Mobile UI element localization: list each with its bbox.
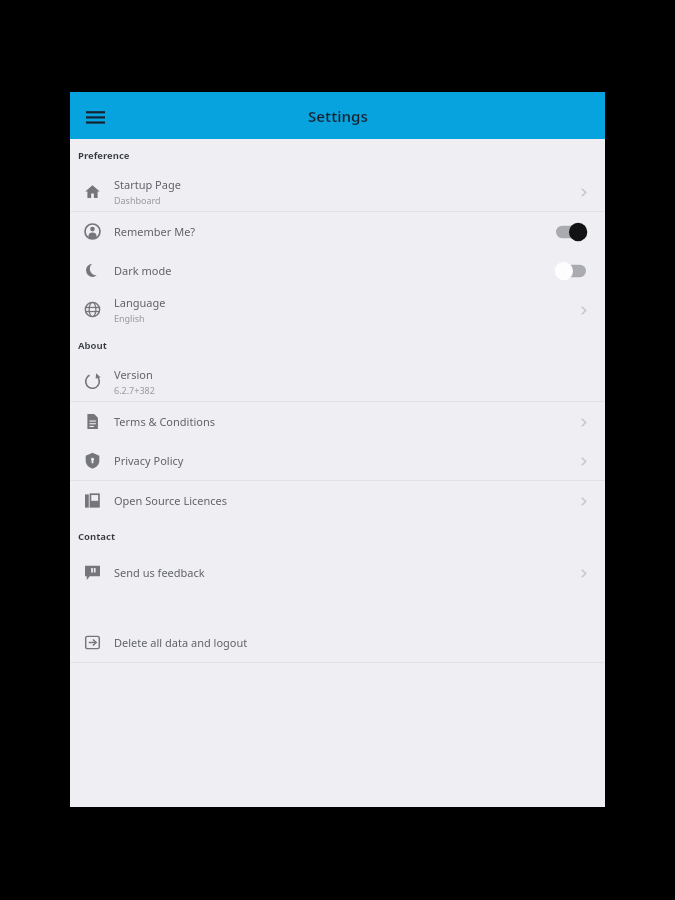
staticText: English <box>114 312 145 324</box>
button[interactable]: Dark mode <box>70 251 605 290</box>
staticText: Open Source Licences <box>114 493 228 508</box>
button[interactable]: Terms & Conditions <box>70 402 605 441</box>
button[interactable]: Dark mode <box>554 261 588 281</box>
staticText: About <box>78 339 107 352</box>
staticText: 6.2.7+382 <box>114 384 155 396</box>
button[interactable]: Delete all data and logout <box>70 623 605 662</box>
staticText: Preference <box>78 149 130 162</box>
button[interactable]: Startup Page <box>70 172 605 211</box>
staticText: Remember Me? <box>114 224 196 239</box>
staticText: Settings <box>308 106 368 126</box>
staticText: Language <box>114 295 166 310</box>
button[interactable]: Open Source Licences <box>70 481 605 520</box>
staticText: Delete all data and logout <box>114 635 248 650</box>
button[interactable]: Open navigation menu <box>76 97 114 135</box>
staticText: Send us feedback <box>114 565 205 580</box>
button[interactable]: Send us feedback <box>70 553 605 592</box>
button[interactable]: Remember Me? <box>554 222 588 242</box>
button[interactable]: Version <box>70 362 605 401</box>
staticText: Dashboard <box>114 194 161 206</box>
staticText: Contact <box>78 530 116 543</box>
staticText: Terms & Conditions <box>114 414 215 429</box>
staticText: Privacy Policy <box>114 453 184 468</box>
staticText: Version <box>114 367 153 382</box>
staticText: Dark mode <box>114 263 172 278</box>
button[interactable]: Privacy Policy <box>70 441 605 480</box>
button[interactable]: Remember Me? <box>70 212 605 251</box>
staticText: Startup Page <box>114 177 181 192</box>
button[interactable]: Language <box>70 290 605 329</box>
